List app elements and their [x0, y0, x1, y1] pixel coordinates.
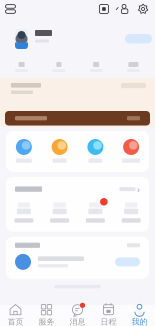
staticText: › — [137, 183, 140, 195]
staticText: 服务 — [38, 317, 54, 326]
button[interactable]: 服务 — [31, 300, 62, 326]
button[interactable]: View all orders — [119, 183, 140, 195]
button[interactable]: 日程 — [93, 300, 124, 326]
button[interactable]: My cards — [94, 0, 114, 18]
button[interactable]: Order status — [6, 202, 42, 223]
button[interactable]: Membership banner — [0, 78, 155, 127]
button[interactable]: Quick action — [42, 139, 78, 163]
button[interactable]: Order status — [113, 202, 149, 223]
staticText: 我的 — [131, 317, 147, 326]
button[interactable]: Statistic — [40, 62, 77, 72]
button[interactable]: 消息 — [62, 300, 93, 326]
button[interactable]: Menu — [0, 0, 20, 18]
button[interactable]: Check in — [125, 34, 152, 43]
button[interactable]: Statistic — [3, 62, 40, 72]
button[interactable]: Quick action — [77, 139, 113, 163]
button[interactable]: More — [127, 243, 140, 247]
button[interactable]: Order status — [77, 202, 113, 223]
button[interactable]: Settings — [133, 0, 153, 18]
button[interactable]: Order status — [42, 202, 78, 223]
staticText: 消息 — [69, 317, 85, 326]
button[interactable]: 我的 — [124, 300, 155, 326]
staticText: 首页 — [7, 317, 23, 326]
button[interactable]: Statistic — [77, 62, 115, 72]
button[interactable]: Contacts — [114, 0, 133, 18]
staticText: 日程 — [100, 317, 116, 326]
button[interactable]: Quick action — [113, 139, 149, 163]
button[interactable]: Quick action — [6, 139, 42, 163]
button[interactable]: Open — [115, 257, 140, 266]
button[interactable]: Profile photo — [15, 29, 28, 49]
button[interactable]: Statistic — [115, 62, 152, 72]
button[interactable]: 首页 — [0, 300, 31, 326]
